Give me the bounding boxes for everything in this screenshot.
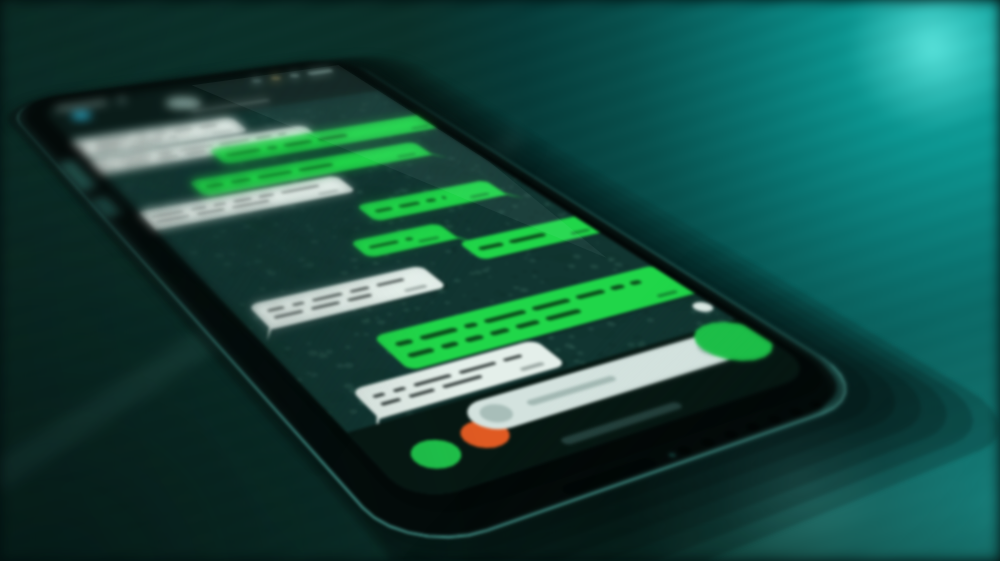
button[interactable]: Messaging app chat screen on a phone: [0, 0, 1000, 561]
